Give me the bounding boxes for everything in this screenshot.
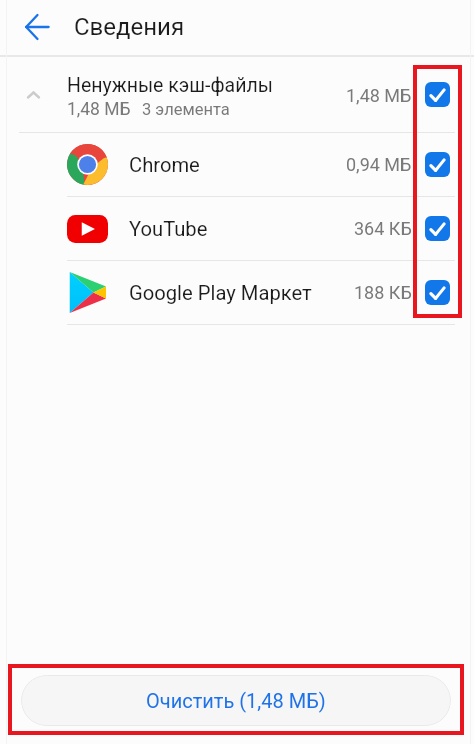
staticText: 188 КБ <box>354 282 412 303</box>
staticText: 0,94 МБ <box>346 154 412 175</box>
button[interactable]: YouTube selected <box>400 197 474 260</box>
staticText: Сведения <box>74 13 185 41</box>
button[interactable]: Ненужные кэш-файлы <box>0 57 474 132</box>
staticText: Очистить (1,48 МБ) <box>146 689 326 712</box>
button[interactable]: Back <box>0 0 74 57</box>
button[interactable]: Chrome <box>0 133 474 196</box>
button[interactable]: Google Play Маркет selected <box>400 261 474 324</box>
staticText: Google Play Маркет <box>129 281 342 305</box>
button[interactable]: Ненужные кэш-файлы selected <box>400 57 474 132</box>
button[interactable]: YouTube <box>0 197 474 260</box>
button[interactable]: Очистить (1,48 МБ) <box>21 675 451 726</box>
button[interactable]: Google Play Маркет <box>0 261 474 324</box>
staticText: 1,48 МБ <box>346 85 412 106</box>
staticText: 3 элемента <box>142 100 230 119</box>
staticText: 1,48 МБ <box>67 99 131 120</box>
staticText: Ненужные кэш-файлы <box>67 74 273 97</box>
button[interactable]: Chrome selected <box>400 133 474 196</box>
staticText: YouTube <box>129 217 342 241</box>
staticText: 364 КБ <box>354 218 412 239</box>
staticText: Chrome <box>129 153 334 177</box>
